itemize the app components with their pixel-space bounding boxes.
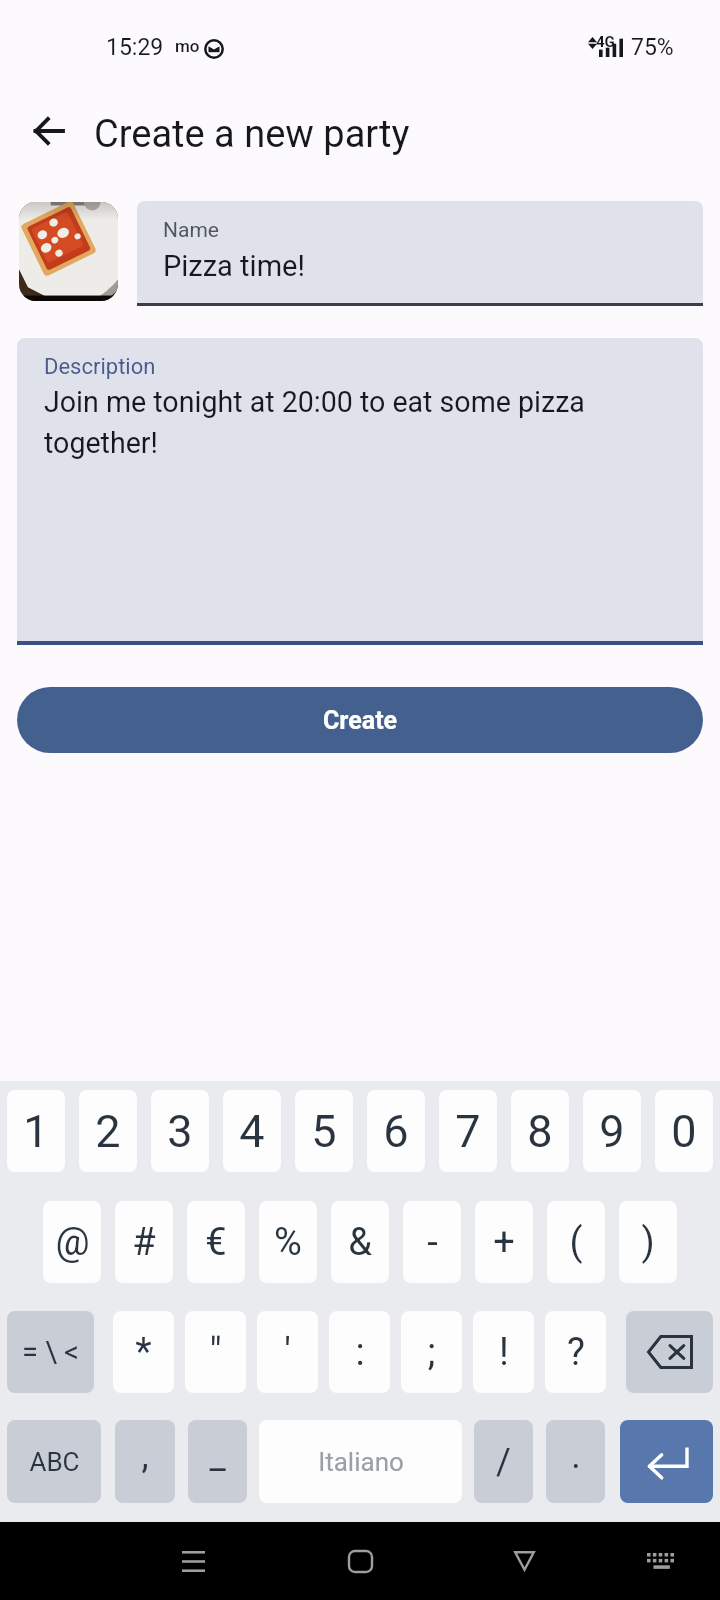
staticText: ) [641,1220,655,1265]
staticText: @ [55,1220,90,1265]
staticText: 6 [383,1105,409,1158]
button[interactable]: @ [43,1201,101,1283]
button[interactable]: 9 [583,1090,641,1172]
button[interactable]: Enter [620,1420,713,1503]
button[interactable]: ! [473,1311,534,1393]
button[interactable]: ? [545,1311,606,1393]
staticText: ( [569,1220,583,1265]
staticText: + [493,1220,515,1265]
staticText: * [135,1330,152,1375]
staticText: mo [175,36,200,56]
button[interactable]: 3 [151,1090,209,1172]
button[interactable]: + [475,1201,533,1283]
button[interactable]: # [115,1201,173,1283]
button[interactable]: / [474,1420,533,1503]
staticText: 4 [239,1105,265,1158]
button[interactable]: 0 [655,1090,713,1172]
button[interactable]: _ [188,1420,247,1503]
staticText: . [571,1435,581,1477]
button[interactable]: 1 [7,1090,65,1172]
button[interactable]: 7 [439,1090,497,1172]
button[interactable]: Name [137,201,703,306]
staticText: 9 [599,1105,625,1158]
staticText: ' [284,1330,291,1375]
staticText: 3 [167,1105,193,1158]
staticText: Join me tonight at 20:00 to eat some piz… [44,385,644,460]
button[interactable]: Italiano [259,1420,462,1503]
staticText: 4G [596,33,615,51]
button[interactable]: Create [17,687,703,753]
staticText: % [274,1220,302,1265]
staticText: € [205,1220,227,1265]
staticText: 5 [311,1105,337,1158]
staticText: _ [209,1435,226,1477]
staticText: 15:29 [106,34,164,61]
staticText: = \ < [22,1335,79,1369]
staticText: Pizza time! [163,249,305,283]
button[interactable]: Home [322,1523,398,1599]
button[interactable]: Description [17,338,703,645]
staticText: : [355,1330,365,1375]
staticText: ? [567,1330,585,1375]
button[interactable]: 6 [367,1090,425,1172]
staticText: Name [163,218,219,243]
button[interactable]: ) [619,1201,677,1283]
staticText: 7 [455,1105,481,1158]
staticText: , [141,1435,149,1477]
staticText: # [132,1220,156,1265]
staticText: Italiano [318,1447,404,1477]
button[interactable]: % [259,1201,317,1283]
button[interactable]: Back [16,99,80,163]
staticText: 0 [671,1105,697,1158]
button[interactable]: * [113,1311,174,1393]
staticText: ABC [29,1447,80,1477]
button[interactable]: ; [401,1311,462,1393]
button[interactable]: - [403,1201,461,1283]
button[interactable]: 5 [295,1090,353,1172]
button[interactable]: Recent apps [155,1523,231,1599]
button[interactable]: Backspace [626,1311,713,1393]
button[interactable]: 4 [223,1090,281,1172]
button[interactable]: 8 [511,1090,569,1172]
staticText: / [496,1441,511,1483]
staticText: & [348,1220,372,1265]
button[interactable]: . [546,1420,605,1503]
button[interactable]: : [329,1311,390,1393]
staticText: 75% [631,34,674,61]
button[interactable]: 2 [79,1090,137,1172]
button[interactable]: " [185,1311,246,1393]
button[interactable]: & [331,1201,389,1283]
staticText: 1 [23,1105,49,1158]
staticText: Description [44,354,156,380]
staticText: ! [499,1330,509,1375]
button[interactable]: = \ < [7,1311,94,1393]
staticText: Create a new party [94,112,410,157]
staticText: 2 [95,1105,121,1158]
button[interactable]: Switch keyboard [622,1523,698,1599]
staticText: " [209,1330,222,1375]
button[interactable]: Back [486,1523,562,1599]
button[interactable]: , [115,1420,175,1503]
staticText: ; [427,1330,436,1375]
button[interactable]: € [187,1201,245,1283]
button[interactable]: ( [547,1201,605,1283]
staticText: Create [323,706,398,735]
button[interactable]: ' [257,1311,318,1393]
button[interactable]: ABC [7,1420,101,1503]
staticText: - [427,1220,438,1265]
staticText: 8 [527,1105,553,1158]
